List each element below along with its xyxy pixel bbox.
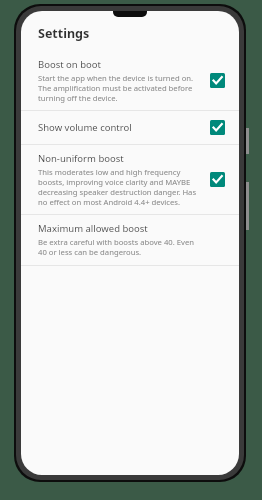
staticText: Non-uniform boost [38, 152, 124, 165]
staticText: This moderates low and high frequency bo… [38, 167, 200, 207]
button[interactable]: Show volume control [210, 120, 225, 135]
button[interactable]: Boost on boot [21, 52, 239, 110]
staticText: Boost on boot [38, 58, 101, 71]
button[interactable]: Show volume control [21, 111, 239, 144]
staticText: Maximum allowed boost [38, 222, 148, 235]
staticText: Start the app when the device is turned … [38, 73, 200, 103]
button[interactable]: Boost on boot [210, 73, 225, 88]
button[interactable]: Maximum allowed boost [21, 215, 239, 265]
staticText: Show volume control [38, 121, 132, 134]
staticText: Be extra careful with boosts above 40. E… [38, 237, 200, 257]
button[interactable]: Non-uniform boost [210, 172, 225, 187]
staticText: Settings [38, 25, 90, 42]
button[interactable]: Non-uniform boost [21, 145, 239, 214]
